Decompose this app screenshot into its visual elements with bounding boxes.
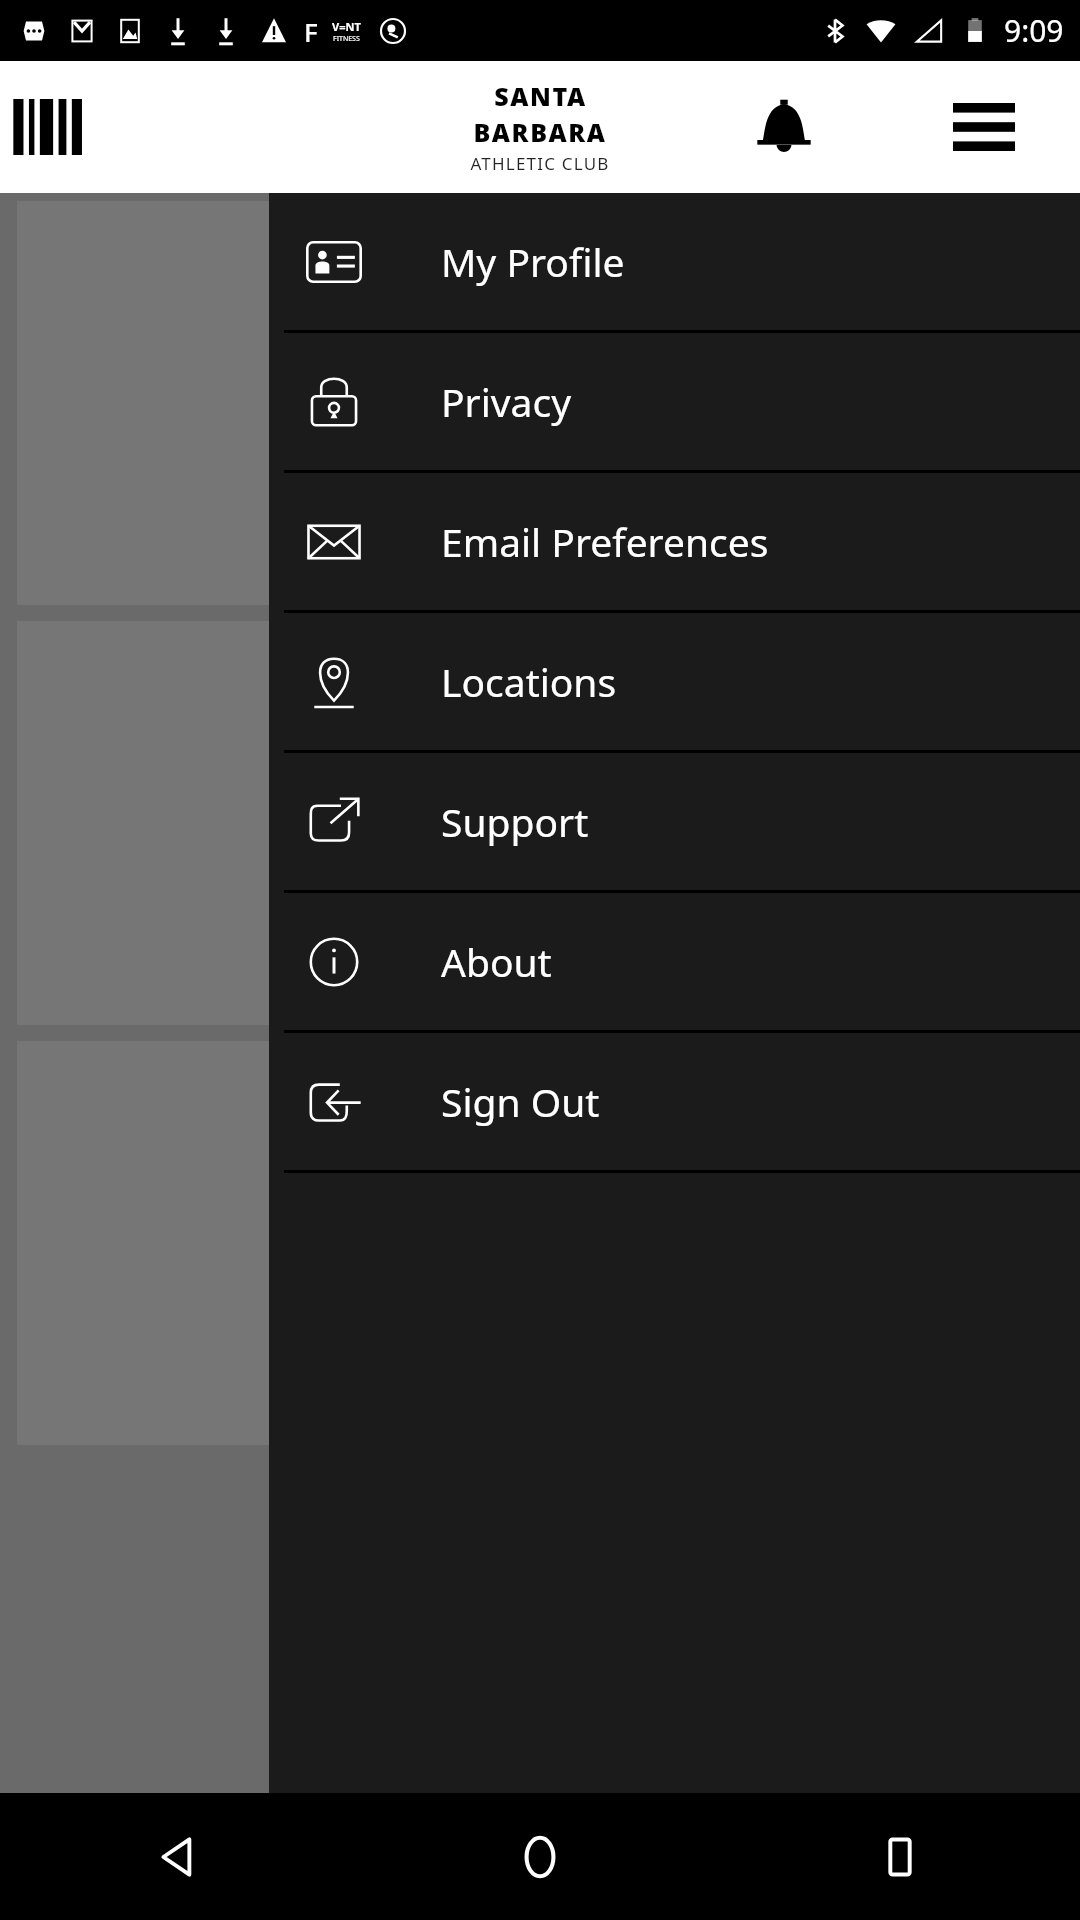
staticText: About — [441, 935, 552, 988]
staticText: SANTA — [494, 79, 587, 113]
button[interactable]: Email Preferences — [269, 473, 1080, 610]
staticText: F — [304, 14, 318, 49]
button[interactable]: Membership barcode — [4, 81, 96, 173]
button[interactable]: Notifications — [736, 79, 832, 175]
staticText: Support — [441, 795, 589, 848]
button[interactable]: About — [269, 893, 1080, 1030]
staticText: BARBARA — [473, 115, 607, 149]
button[interactable]: Support — [269, 753, 1080, 890]
staticText: FITNESS — [333, 34, 360, 44]
staticText: Find a Class — [442, 498, 639, 544]
button[interactable]: Home — [360, 1793, 720, 1920]
staticText: Privacy — [441, 375, 572, 428]
button[interactable]: Locations — [269, 613, 1080, 750]
staticText: Locations — [441, 655, 617, 708]
staticText: ATHLETIC CLUB — [470, 152, 610, 175]
button[interactable]: My Profile — [269, 193, 1080, 330]
staticText: My Profile — [441, 235, 625, 288]
button[interactable]: Menu — [936, 79, 1032, 175]
button[interactable]: Sign Out — [269, 1033, 1080, 1170]
staticText: Email Preferences — [441, 515, 769, 568]
staticText: V=NT — [332, 19, 361, 34]
staticText: Deals — [494, 918, 587, 964]
staticText: 9:09 — [1004, 10, 1064, 51]
button[interactable]: Deals — [17, 621, 1063, 1025]
button[interactable]: Record a Workout — [17, 1041, 1063, 1445]
button[interactable]: Back — [0, 1793, 360, 1920]
button[interactable]: Find a Class — [17, 201, 1063, 605]
button[interactable]: Recent apps — [720, 1793, 1080, 1920]
staticText: Sign Out — [441, 1075, 600, 1128]
button[interactable]: Privacy — [269, 333, 1080, 470]
